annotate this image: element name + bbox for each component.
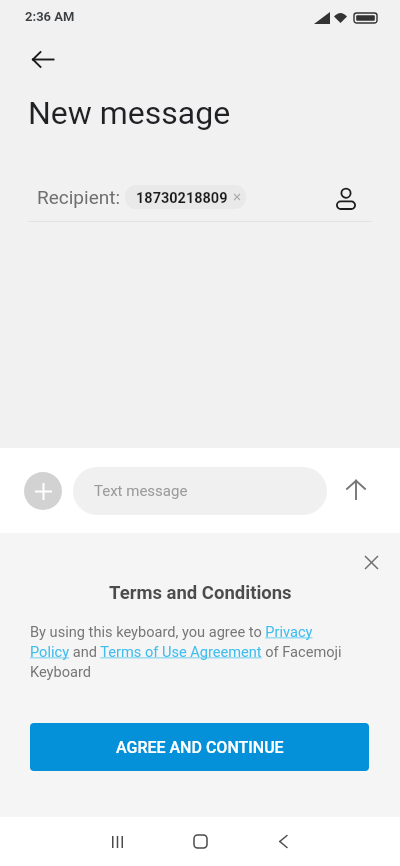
staticText: New message (28, 94, 231, 132)
button[interactable]: Close (353, 544, 389, 580)
staticText: AGREE AND CONTINUE (116, 738, 284, 757)
button[interactable]: Choose contact (330, 183, 362, 215)
button[interactable]: Recent apps (91, 817, 143, 866)
button[interactable]: AGREE AND CONTINUE (30, 723, 369, 771)
button[interactable]: Text message (73, 467, 327, 515)
button[interactable]: Back (257, 817, 309, 866)
staticText: Terms and Conditions (109, 582, 292, 604)
button[interactable]: 18730218809 (125, 185, 246, 209)
staticText: By using this keyboard, you agree to Pri… (30, 623, 348, 680)
button[interactable]: Send (338, 471, 374, 507)
staticText: Text message (94, 482, 188, 500)
button[interactable]: Back (21, 37, 65, 81)
staticText: 18730218809 (136, 190, 228, 207)
button[interactable]: Add attachment (24, 472, 62, 510)
staticText: 2:36 AM (25, 9, 75, 24)
button[interactable]: Home (174, 817, 226, 866)
staticText: Recipient: (37, 186, 121, 208)
